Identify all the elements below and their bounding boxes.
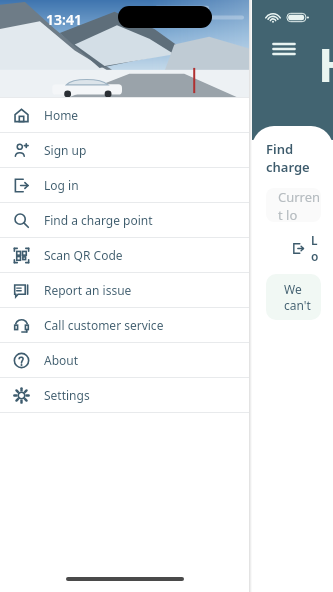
button[interactable]: Call customer service — [0, 308, 249, 342]
button[interactable]: Current lo — [266, 188, 321, 222]
button[interactable]: Open navigation menu — [270, 38, 298, 60]
button[interactable]: Find a charge point — [0, 203, 249, 237]
button[interactable]: Report an issue — [0, 273, 249, 307]
staticText: We can't — [284, 281, 321, 313]
button[interactable]: Log in — [0, 168, 249, 202]
staticText: Current lo — [278, 188, 321, 222]
staticText: Find a charge point — [44, 212, 153, 228]
staticText: Find charge — [266, 140, 321, 176]
button[interactable]: About — [0, 343, 249, 377]
staticText: Scan QR Code — [44, 247, 123, 263]
staticText: Call customer service — [44, 317, 164, 333]
staticText: Sign up — [44, 142, 87, 158]
staticText: Settings — [44, 387, 90, 403]
staticText: Report an issue — [44, 282, 132, 298]
staticText: Home — [44, 107, 79, 123]
staticText: Lo — [311, 232, 321, 264]
button[interactable]: Settings — [0, 378, 249, 412]
button[interactable]: Home — [0, 98, 249, 132]
staticText: H — [318, 33, 333, 96]
staticText: 13:41 — [46, 10, 82, 29]
staticText: Log in — [44, 177, 79, 193]
staticText: About — [44, 352, 79, 368]
button[interactable]: Sign up — [0, 133, 249, 167]
button[interactable]: Scan QR Code — [0, 238, 249, 272]
button[interactable]: Lo — [266, 232, 321, 264]
